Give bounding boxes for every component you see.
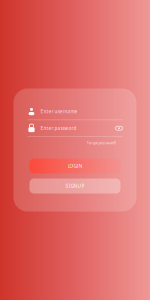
button[interactable]: Enter password (13, 120, 136, 136)
staticText: Enter password (40, 125, 76, 131)
button[interactable]: SIGNUP (29, 178, 120, 193)
button[interactable]: LOGIN (29, 158, 120, 173)
staticText: Enter username (40, 108, 77, 115)
staticText: SIGNUP (65, 183, 84, 189)
button[interactable]: Enter username (13, 103, 136, 119)
staticText: LOGIN (67, 163, 82, 169)
staticText: Forgot password? (86, 140, 116, 145)
button[interactable]: Forgot password? (85, 138, 117, 147)
